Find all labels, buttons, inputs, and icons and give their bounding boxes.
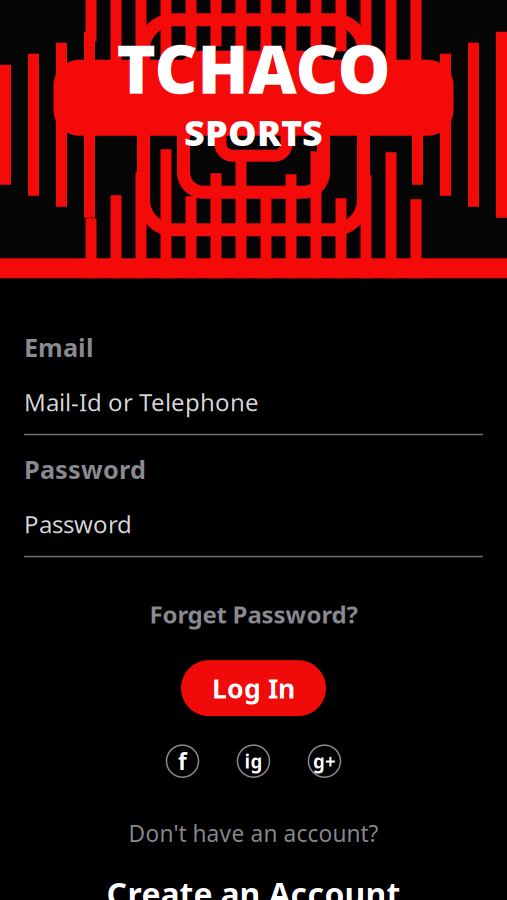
staticText: Forget Password?	[149, 598, 357, 630]
button[interactable]: Facebook	[164, 743, 200, 779]
button[interactable]: Forget Password?	[24, 590, 483, 638]
button[interactable]: Google Plus	[306, 743, 342, 779]
staticText: Don't have an account?	[128, 818, 378, 848]
staticText: ig	[244, 749, 262, 774]
staticText: Create an Account	[106, 872, 400, 900]
staticText: Password	[24, 452, 146, 486]
button[interactable]: Instagram	[235, 743, 271, 779]
staticText: Log In	[212, 670, 295, 706]
button[interactable]: Create an Account	[24, 866, 483, 900]
staticText: g+	[313, 749, 336, 774]
staticText: Mail-Id or Telephone	[24, 386, 259, 418]
button[interactable]: Log In	[181, 660, 326, 716]
staticText: Password	[24, 508, 132, 540]
staticText: TCHACO	[116, 24, 390, 112]
staticText: SPORTS	[184, 108, 323, 156]
staticText: Email	[24, 330, 94, 364]
staticText: f	[178, 746, 187, 776]
